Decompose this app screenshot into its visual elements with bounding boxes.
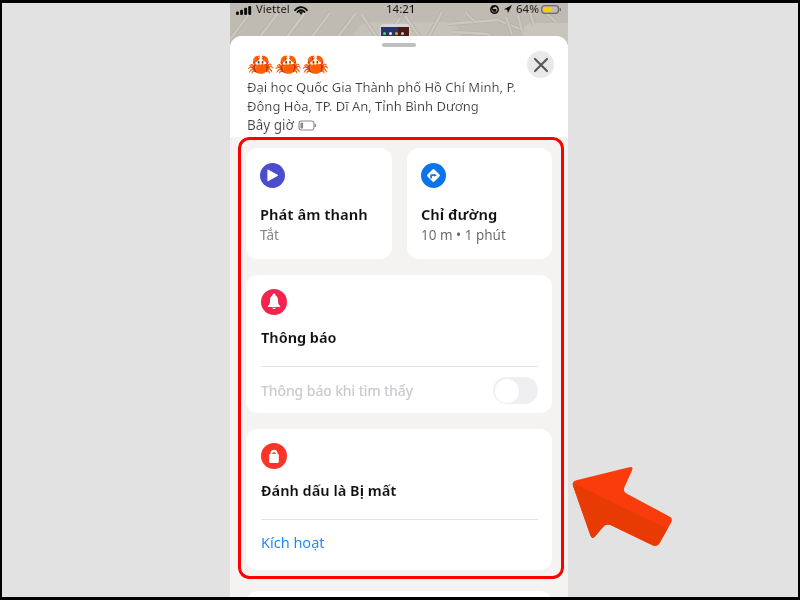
button[interactable]: Chỉ đường [407,148,552,259]
staticText: Đại học Quốc Gia Thành phố Hồ Chí Minh, … [247,78,522,115]
staticText: 14:21 [386,1,416,17]
staticText: Viettel [256,1,290,16]
staticText: Phát âm thanh [260,204,368,224]
button[interactable]: Thông báo khi tìm thấy [493,377,538,404]
button[interactable]: Đánh dấu là Bị mất [246,429,552,519]
staticText: Thông báo khi tìm thấy [261,381,413,400]
staticText: 🦀🦀🦀 [247,52,330,78]
button[interactable]: Kích hoạt [246,520,552,570]
staticText: Thông báo [261,328,337,348]
staticText: Bây giờ [247,116,294,134]
button[interactable]: Đóng [527,51,554,78]
staticText: 10 m • 1 phút [421,226,506,244]
button[interactable]: Phát âm thanh [246,148,392,259]
staticText: Chỉ đường [421,204,498,224]
staticText: Kích hoạt [261,532,325,552]
button[interactable]: Thông báo [246,275,552,366]
staticText: Đánh dấu là Bị mất [261,481,397,501]
staticText: Tắt [260,226,279,244]
button[interactable]: Thông báo khi tìm thấy [246,367,552,413]
staticText: 64% [516,1,539,17]
